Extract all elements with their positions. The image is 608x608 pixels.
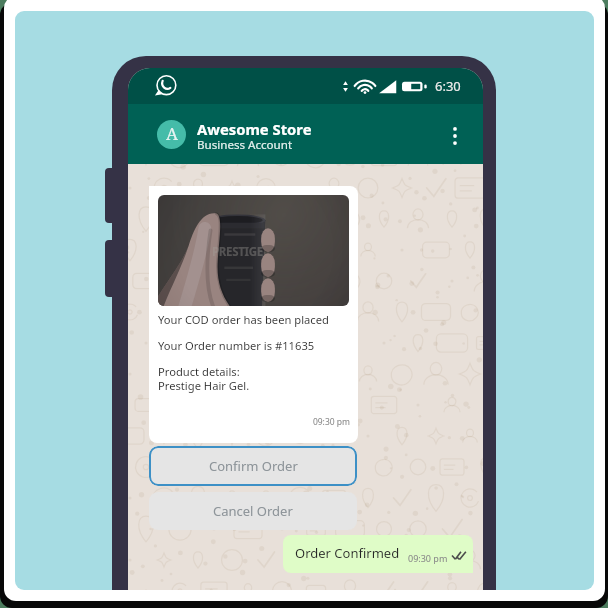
staticText: 09:30 pm	[408, 552, 448, 564]
staticText: Cancel Order	[213, 502, 293, 520]
staticText: Your COD order has been placed	[158, 312, 329, 327]
button[interactable]: Cancel Order	[149, 492, 357, 530]
staticText: 09:30 pm	[149, 416, 350, 428]
staticText: A	[166, 122, 178, 145]
staticText: 6:30	[435, 77, 461, 95]
button[interactable]: Confirm Order	[149, 446, 357, 486]
staticText: Awesome Store	[197, 119, 312, 139]
staticText: Your Order number is #11635	[158, 338, 315, 353]
button[interactable]: More options	[440, 119, 470, 149]
staticText: Product details: Prestige Hair Gel.	[158, 364, 250, 393]
staticText: Order Confirmed	[295, 544, 400, 562]
staticText: PRESTIGE	[212, 244, 263, 260]
staticText: Business Account	[197, 137, 293, 153]
staticText: Confirm Order	[209, 457, 298, 475]
